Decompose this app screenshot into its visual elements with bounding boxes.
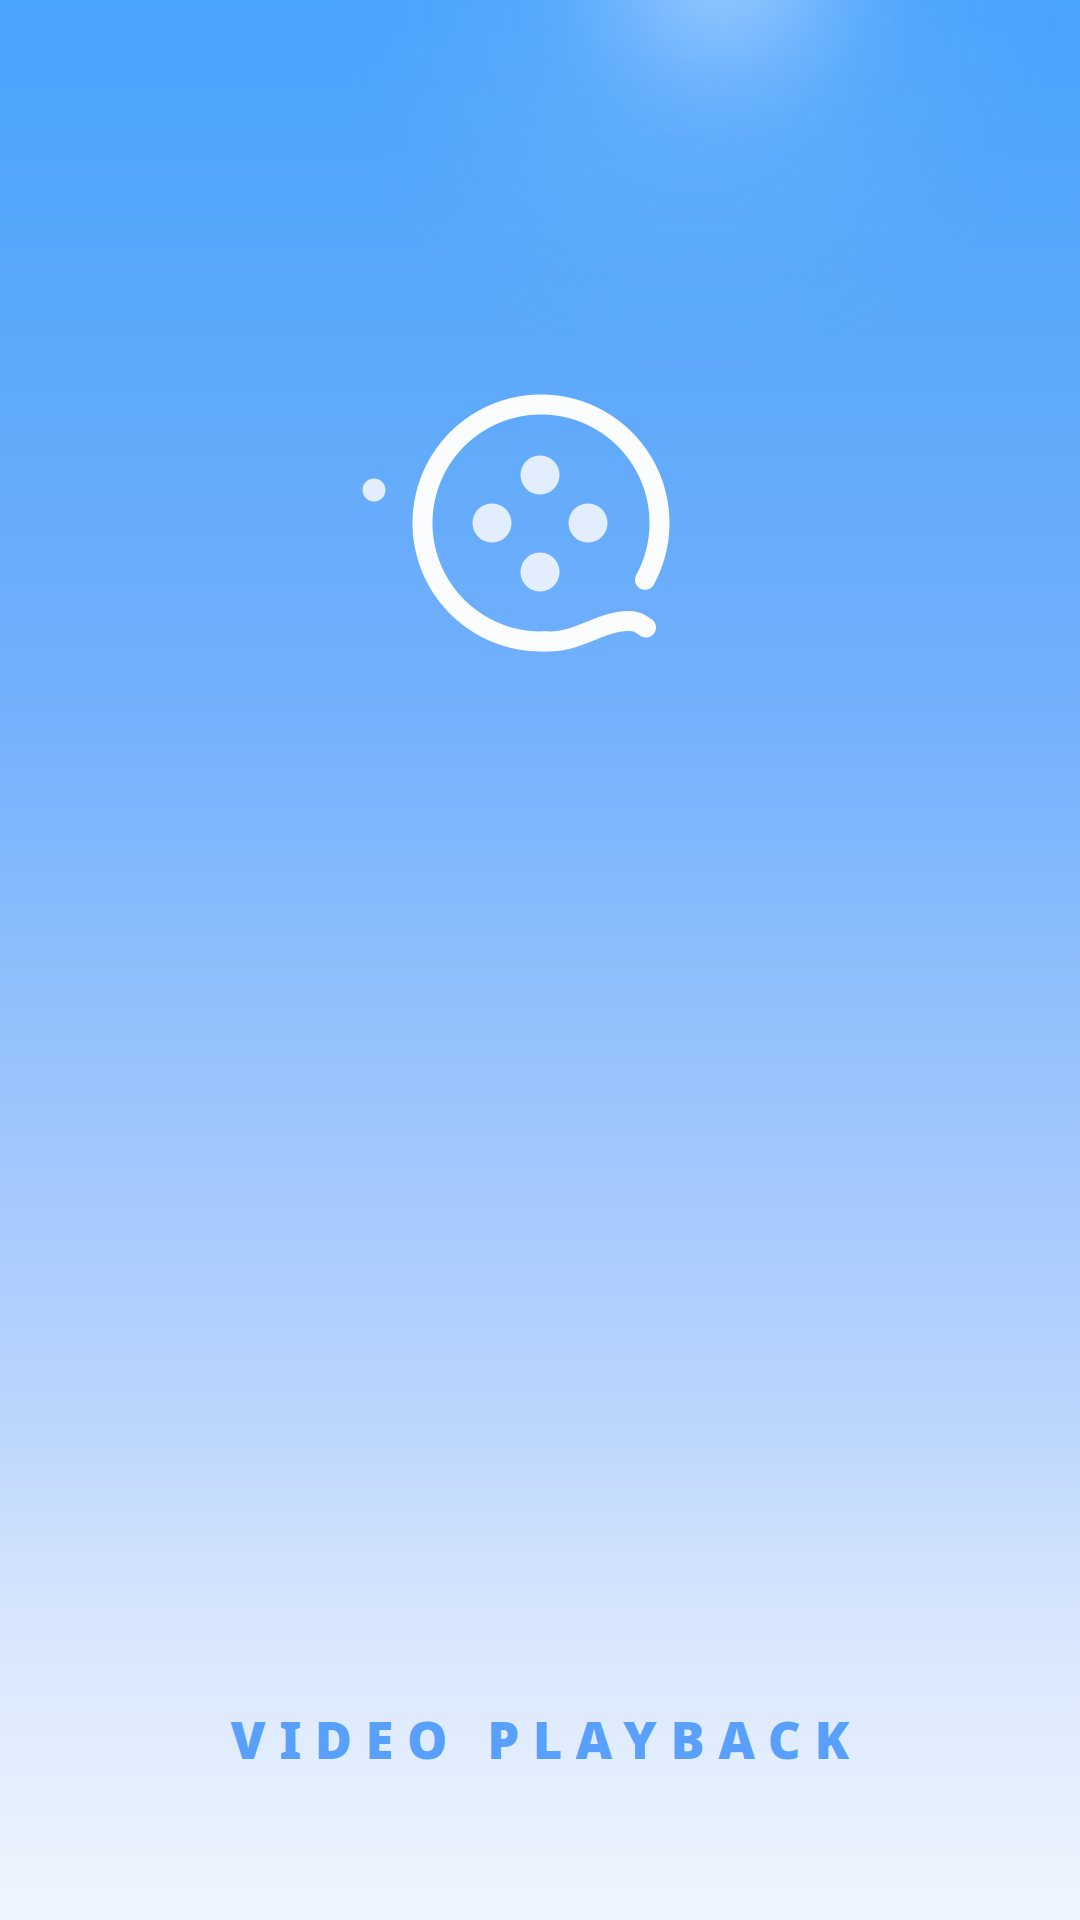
- button[interactable]: Video Playback: [0, 0, 1080, 1920]
- staticText: VIDEO PLAYBACK: [231, 1706, 849, 1773]
